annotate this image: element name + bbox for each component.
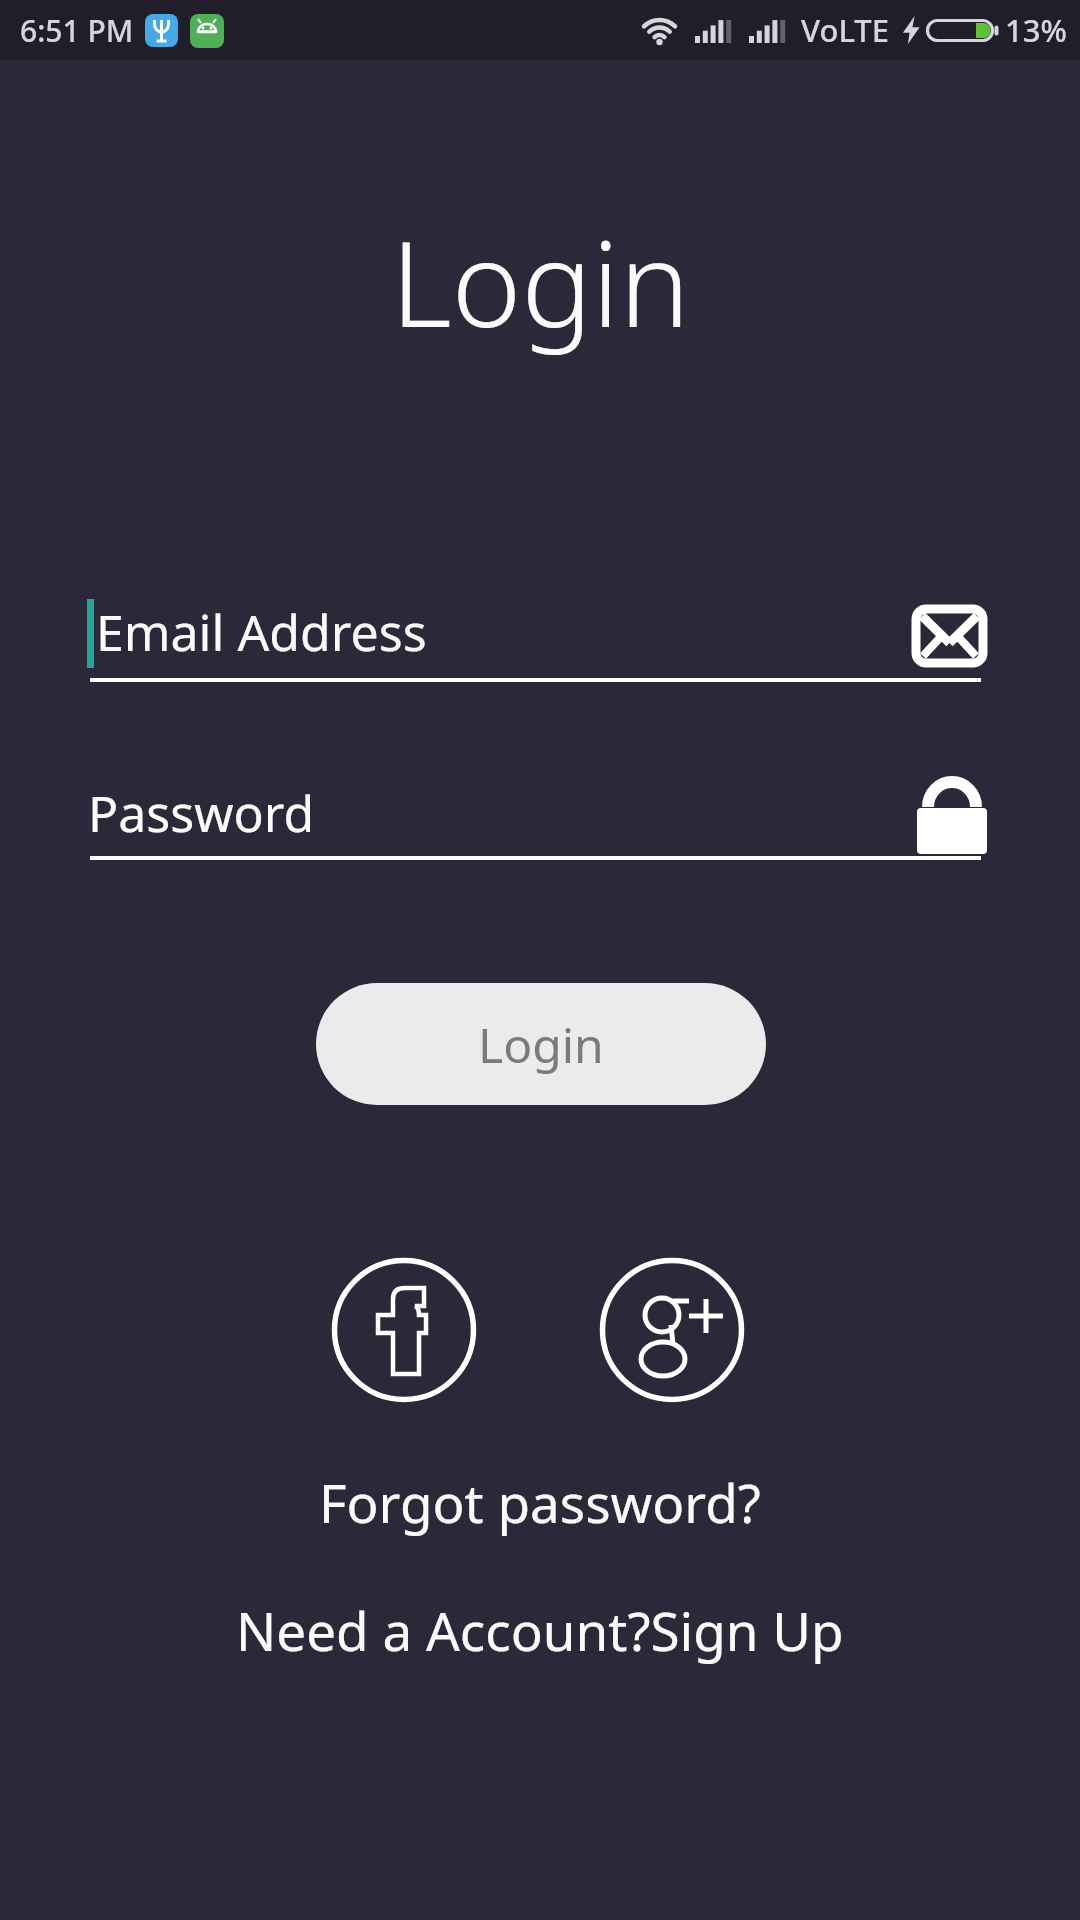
button[interactable] <box>599 1257 745 1403</box>
staticText: Login <box>478 1012 604 1077</box>
staticText: VoLTE <box>801 9 890 51</box>
staticText: 6:51 PM <box>20 10 134 51</box>
button[interactable]: Need a Account?Sign Up <box>236 1594 844 1666</box>
button[interactable]: Email Address <box>90 600 987 672</box>
button[interactable]: Forgot password? <box>319 1466 761 1538</box>
button[interactable] <box>331 1257 477 1403</box>
staticText: 13% <box>1005 9 1067 51</box>
button[interactable]: Password <box>90 776 987 848</box>
staticText: Login <box>391 201 690 362</box>
staticText: Need a Account?Sign Up <box>236 1594 844 1666</box>
staticText: Email Address <box>96 598 427 666</box>
staticText: Password <box>88 779 315 847</box>
staticText: Forgot password? <box>319 1466 761 1538</box>
button[interactable]: Login <box>316 983 766 1105</box>
